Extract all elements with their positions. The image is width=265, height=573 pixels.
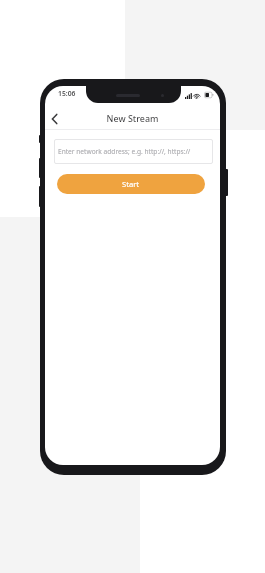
button[interactable]: Back — [45, 108, 65, 130]
button[interactable]: Start — [57, 174, 205, 194]
button[interactable]: Enter network address; e.g. http://, htt… — [54, 139, 213, 164]
staticText: 15:06 — [58, 89, 76, 98]
staticText: Start — [122, 179, 140, 189]
staticText: New Stream — [45, 112, 220, 124]
staticText: Enter network address; e.g. http://, htt… — [58, 147, 191, 156]
